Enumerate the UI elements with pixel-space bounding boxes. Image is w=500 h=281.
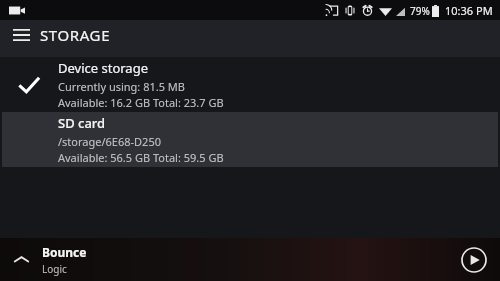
button[interactable]: Open navigation drawer: [6, 20, 36, 50]
staticText: STORAGE: [40, 25, 111, 45]
staticText: Device storage: [58, 59, 148, 77]
staticText: Currently using: 81.5 MB: [58, 79, 185, 94]
staticText: 79%: [410, 4, 430, 18]
button[interactable]: Device storage: [0, 57, 500, 112]
staticText: 10:36 PM: [445, 3, 493, 18]
button[interactable]: Expand player: [0, 238, 500, 281]
button[interactable]: SD card: [2, 112, 498, 167]
button[interactable]: Expand player: [0, 238, 42, 281]
button[interactable]: Play: [458, 244, 490, 276]
staticText: Logic: [42, 262, 67, 276]
staticText: /storage/6E68-D250: [58, 134, 161, 149]
staticText: Available: 16.2 GB Total: 23.7 GB: [58, 95, 224, 110]
staticText: Bounce: [42, 244, 87, 260]
staticText: Available: 56.5 GB Total: 59.5 GB: [58, 150, 224, 165]
staticText: SD card: [58, 114, 106, 132]
